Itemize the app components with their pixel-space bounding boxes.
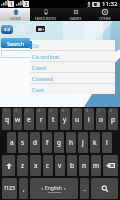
button[interactable]: Co	[30, 40, 115, 50]
button[interactable]: Coat	[30, 84, 115, 94]
staticText: p	[111, 115, 115, 124]
staticText: h	[69, 138, 74, 147]
staticText: OTHER	[99, 16, 111, 21]
staticText: 8	[86, 108, 89, 113]
button[interactable]: Co-ordinat	[30, 51, 115, 61]
staticText: f	[46, 138, 49, 147]
button[interactable]: FAVOURITES	[30, 8, 60, 21]
staticText: n	[82, 161, 87, 170]
staticText: English	[45, 185, 63, 192]
staticText: o	[99, 115, 103, 124]
button[interactable]: 4	[36, 108, 46, 130]
staticText: u	[75, 115, 80, 124]
button[interactable]: a	[7, 132, 16, 153]
staticText: ,	[23, 184, 25, 193]
staticText: 0	[110, 108, 113, 113]
button[interactable]: f	[42, 132, 52, 153]
staticText: i	[88, 115, 90, 124]
button[interactable]: n	[79, 155, 89, 176]
staticText: Search	[7, 40, 25, 47]
button[interactable]: HOME	[0, 8, 30, 21]
staticText: HOME	[10, 16, 21, 21]
staticText: k	[93, 138, 97, 147]
button[interactable]: Coast	[30, 62, 115, 72]
button[interactable]: x	[30, 155, 41, 176]
button[interactable]: s	[18, 132, 28, 153]
staticText: b	[70, 161, 74, 170]
staticText: 9	[98, 108, 101, 113]
staticText: s	[21, 138, 25, 147]
button[interactable]: GAMES	[60, 8, 90, 21]
staticText: r	[40, 115, 43, 124]
staticText: Coasted	[32, 75, 53, 82]
button[interactable]: 1	[2, 108, 11, 130]
staticText: 3	[26, 108, 29, 113]
staticText: 2	[15, 108, 18, 113]
staticText: m	[93, 161, 100, 170]
staticText: q	[5, 115, 9, 124]
staticText: 5	[50, 108, 53, 113]
button[interactable]: Backspace	[103, 155, 118, 176]
button[interactable]: 6	[60, 108, 70, 130]
button[interactable]: d	[30, 132, 40, 153]
button[interactable]: OTHER	[90, 8, 120, 21]
staticText: 6	[62, 108, 65, 113]
button[interactable]: Text field	[1, 50, 32, 58]
staticText: FAVOURITES	[35, 16, 56, 21]
staticText: 4	[38, 108, 41, 113]
button[interactable]: 3	[24, 108, 34, 130]
staticText: ◂	[41, 186, 44, 191]
button[interactable]: Menu	[36, 26, 45, 32]
staticText: GAMES	[69, 16, 82, 21]
button[interactable]: l	[102, 132, 112, 153]
staticText: .	[84, 184, 86, 193]
button[interactable]: k	[90, 132, 100, 153]
button[interactable]: 2	[13, 108, 22, 130]
staticText: z	[21, 161, 25, 170]
staticText: l	[106, 138, 108, 147]
staticText: t	[52, 115, 55, 124]
button[interactable]: m	[91, 155, 101, 176]
staticText: a	[10, 138, 14, 147]
button[interactable]: b	[67, 155, 77, 176]
button[interactable]: 7	[72, 108, 82, 130]
button[interactable]: v	[55, 155, 65, 176]
staticText: y	[63, 115, 67, 124]
staticText: g	[57, 138, 61, 147]
button[interactable]: 8	[84, 108, 94, 130]
button[interactable]: ?123	[2, 178, 17, 199]
staticText: Co-ordinat	[32, 53, 60, 60]
staticText: 7	[74, 108, 77, 113]
button[interactable]: App logo	[1, 25, 13, 34]
staticText: c	[46, 161, 50, 170]
staticText: Coat	[32, 86, 44, 93]
staticText: x	[34, 161, 38, 170]
button[interactable]: 5	[48, 108, 58, 130]
staticText: 3-V	[4, 27, 11, 32]
button[interactable]: g	[54, 132, 64, 153]
staticText: 1	[4, 108, 7, 113]
button[interactable]: ,	[19, 178, 28, 199]
button[interactable]: Search	[1, 38, 30, 48]
button[interactable]: 9	[96, 108, 106, 130]
button[interactable]: z	[17, 155, 28, 176]
staticText: w	[15, 115, 21, 124]
button[interactable]: .	[80, 178, 89, 199]
staticText: Co	[32, 42, 39, 49]
button[interactable]: j	[78, 132, 88, 153]
staticText: v	[58, 161, 62, 170]
button[interactable]: c	[43, 155, 53, 176]
button[interactable]: h	[66, 132, 76, 153]
button[interactable]: Search	[91, 178, 118, 199]
button[interactable]: Space	[30, 178, 78, 199]
button[interactable]: Shift	[2, 155, 15, 176]
staticText: d	[33, 138, 37, 147]
staticText: ?123	[4, 185, 15, 192]
staticText: j	[82, 138, 84, 147]
button[interactable]: Coasted	[30, 73, 115, 83]
staticText: ▸	[64, 186, 67, 191]
button[interactable]: 0	[108, 108, 118, 130]
staticText: 2	[25, 1, 28, 7]
staticText: Coast	[32, 64, 47, 71]
staticText: e	[27, 115, 31, 124]
